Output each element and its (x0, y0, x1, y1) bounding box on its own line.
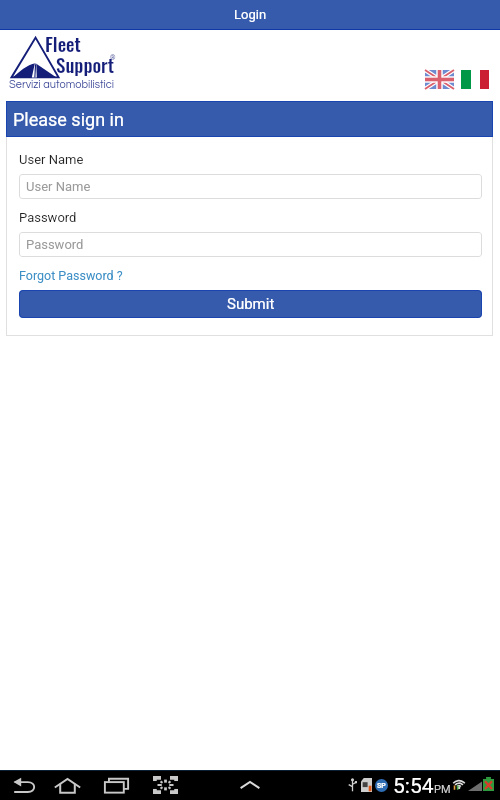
staticText: Servizi automobilistici (9, 79, 115, 90)
button[interactable]: English (425, 70, 454, 89)
button[interactable]: Submit (19, 290, 482, 318)
staticText: Forgot Password ? (19, 268, 123, 283)
staticText: User Name (26, 179, 91, 194)
button[interactable]: Show keyboard (231, 770, 269, 800)
button[interactable]: Password (19, 232, 482, 257)
staticText: ® (110, 54, 116, 62)
staticText: User Name (19, 152, 84, 167)
button[interactable]: Back (6, 770, 44, 800)
staticText: Login (234, 7, 267, 22)
button[interactable]: Italiano (461, 70, 489, 89)
button[interactable]: Forgot Password ? (19, 268, 123, 283)
staticText: SP (377, 782, 386, 790)
staticText: Submit (227, 295, 275, 313)
button[interactable]: Recent apps (97, 770, 135, 800)
staticText: Password (26, 237, 84, 252)
staticText: PM (434, 783, 451, 796)
staticText: Support (56, 50, 115, 78)
staticText: Please sign in (13, 109, 124, 130)
button[interactable]: Home (48, 770, 86, 800)
staticText: 5:54 (393, 774, 434, 799)
staticText: Password (19, 210, 77, 225)
staticText: Fleet (45, 29, 81, 57)
button[interactable]: User Name (19, 174, 482, 199)
button[interactable]: Screenshot (146, 770, 184, 800)
